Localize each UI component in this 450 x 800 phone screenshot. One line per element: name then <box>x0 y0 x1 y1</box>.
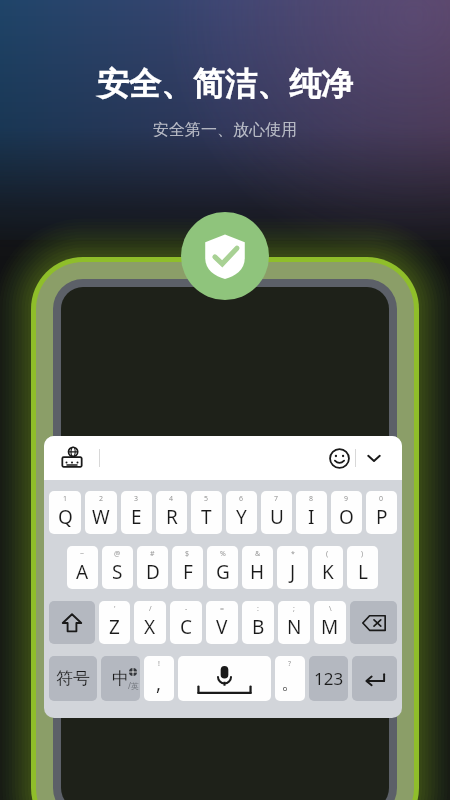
staticText: K <box>322 559 334 585</box>
staticText: P <box>376 504 388 530</box>
staticText: $ <box>185 549 190 559</box>
staticText: , <box>156 670 162 696</box>
button[interactable]: Secure <box>181 212 269 300</box>
button[interactable]: 8 <box>296 491 327 534</box>
staticText: V <box>216 614 228 640</box>
button[interactable]: - <box>170 601 202 644</box>
button[interactable]: 123 <box>309 656 348 701</box>
staticText: H <box>250 559 265 585</box>
staticText: L <box>358 559 368 585</box>
button[interactable]: Emoji <box>323 442 355 474</box>
button[interactable]: % <box>207 546 238 589</box>
button[interactable]: ( <box>312 546 343 589</box>
button[interactable]: Switch input method <box>56 442 88 474</box>
staticText: F <box>183 559 193 585</box>
staticText: S <box>112 559 123 585</box>
button[interactable]: Space <box>178 656 271 701</box>
button[interactable]: ~ <box>67 546 98 589</box>
button[interactable]: ? <box>275 656 305 701</box>
staticText: 2 <box>99 494 104 504</box>
button[interactable]: 9 <box>331 491 362 534</box>
button[interactable]: # <box>137 546 168 589</box>
staticText: # <box>150 549 155 559</box>
staticText: X <box>144 614 156 640</box>
button[interactable]: 0 <box>366 491 397 534</box>
staticText: Z <box>109 614 120 640</box>
staticText: 123 <box>314 667 344 690</box>
button[interactable]: Backspace <box>350 601 397 644</box>
button[interactable]: 2 <box>85 491 117 534</box>
staticText: 6 <box>239 494 244 504</box>
staticText: 1 <box>63 494 68 504</box>
button[interactable]: ) <box>347 546 378 589</box>
staticText: 9 <box>344 494 349 504</box>
staticText: 安全第一、放心使用 <box>153 120 297 140</box>
button[interactable]: = <box>206 601 238 644</box>
staticText: ; <box>293 604 295 614</box>
staticText: 3 <box>134 494 139 504</box>
staticText: : <box>257 604 259 614</box>
staticText: 7 <box>274 494 279 504</box>
staticText: Y <box>236 504 247 530</box>
staticText: E <box>131 504 142 530</box>
button[interactable]: 1 <box>49 491 81 534</box>
button[interactable]: : <box>242 601 274 644</box>
staticText: J <box>290 559 296 585</box>
staticText: % <box>220 549 226 559</box>
button[interactable]: 4 <box>156 491 187 534</box>
staticText: U <box>270 504 284 530</box>
staticText: @ <box>114 549 121 559</box>
button[interactable]: @ <box>102 546 133 589</box>
staticText: R <box>166 504 178 530</box>
staticText: D <box>146 559 160 585</box>
button[interactable]: \ <box>314 601 346 644</box>
staticText: 符号 <box>56 668 90 689</box>
button[interactable]: 符号 <box>49 656 97 701</box>
staticText: B <box>252 614 265 640</box>
staticText: ! <box>158 659 160 669</box>
staticText: ~ <box>80 549 85 559</box>
staticText: ? <box>288 659 292 669</box>
button[interactable]: $ <box>172 546 203 589</box>
button[interactable]: ; <box>278 601 310 644</box>
staticText: ) <box>361 549 364 559</box>
staticText: ' <box>114 604 116 614</box>
button[interactable]: & <box>242 546 273 589</box>
button[interactable]: 6 <box>226 491 257 534</box>
staticText: I <box>308 504 315 530</box>
button[interactable]: Shift <box>49 601 95 644</box>
button[interactable]: * <box>277 546 308 589</box>
staticText: M <box>321 614 339 640</box>
staticText: 5 <box>204 494 209 504</box>
staticText: \ <box>329 604 332 614</box>
button[interactable]: 5 <box>191 491 222 534</box>
button[interactable]: / <box>134 601 166 644</box>
staticText: A <box>76 559 89 585</box>
staticText: C <box>180 614 193 640</box>
staticText: 安全、简洁、纯净 <box>97 64 353 104</box>
staticText: * <box>291 549 295 559</box>
staticText: 中 <box>112 668 129 689</box>
staticText: N <box>287 614 302 640</box>
staticText: 0 <box>379 494 384 504</box>
staticText: O <box>339 504 354 530</box>
staticText: /英 <box>128 680 139 691</box>
staticText: = <box>220 604 225 614</box>
button[interactable]: 7 <box>261 491 292 534</box>
button[interactable]: Hide keyboard <box>356 440 392 476</box>
staticText: Q <box>58 504 73 530</box>
button[interactable]: ' <box>99 601 130 644</box>
staticText: G <box>216 559 230 585</box>
staticText: ( <box>326 549 329 559</box>
staticText: & <box>255 549 261 559</box>
staticText: W <box>92 504 110 530</box>
staticText: 4 <box>169 494 174 504</box>
staticText: T <box>201 504 212 530</box>
button[interactable]: 3 <box>121 491 152 534</box>
staticText: - <box>185 604 188 614</box>
button[interactable]: Enter <box>352 656 397 701</box>
staticText: 。 <box>281 671 300 695</box>
staticText: 8 <box>309 494 314 504</box>
button[interactable]: ! <box>144 656 174 701</box>
button[interactable]: Chinese English toggle <box>101 656 140 701</box>
